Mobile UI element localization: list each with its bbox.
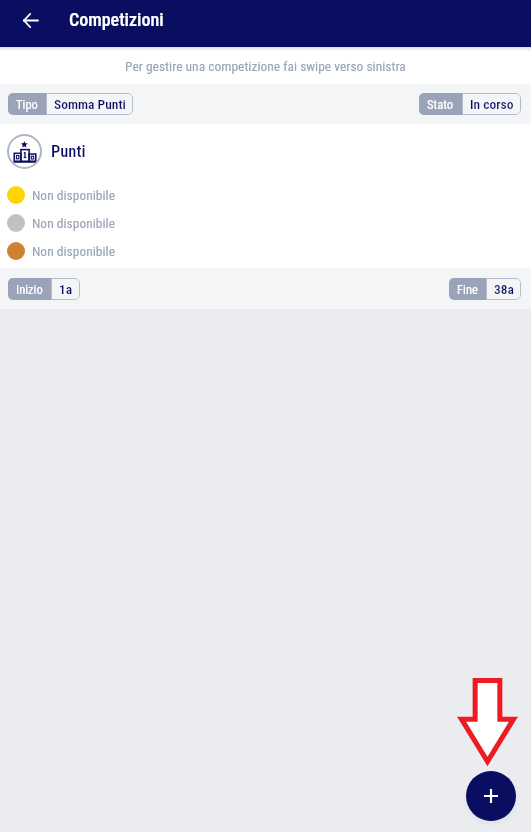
staticText: Per gestire una competizione fai swipe v… [125,58,406,74]
staticText: Inizio [16,282,43,297]
staticText: Stato [427,97,454,112]
button[interactable]: Indietro [12,2,48,38]
button[interactable]: Non disponibile [0,237,531,265]
staticText: Fine [457,282,478,297]
button[interactable]: Non disponibile [0,181,531,209]
staticText: Competizioni [69,9,164,30]
staticText: 38a [494,281,514,297]
staticText: 1a [59,281,73,297]
staticText: In corso [470,96,514,112]
button[interactable]: Non disponibile [0,209,531,237]
button[interactable]: Inizio [8,278,80,300]
staticText: Non disponibile [32,243,115,259]
staticText: Non disponibile [32,215,115,231]
button[interactable]: Aggiungi competizione [466,771,516,821]
button[interactable]: Fine [449,278,521,300]
staticText: Somma Punti [54,96,126,112]
staticText: Punti [51,142,86,161]
staticText: Tipo [16,97,38,112]
button[interactable]: Stato [419,93,521,115]
staticText: Non disponibile [32,187,115,203]
button[interactable]: Tipo [8,93,133,115]
